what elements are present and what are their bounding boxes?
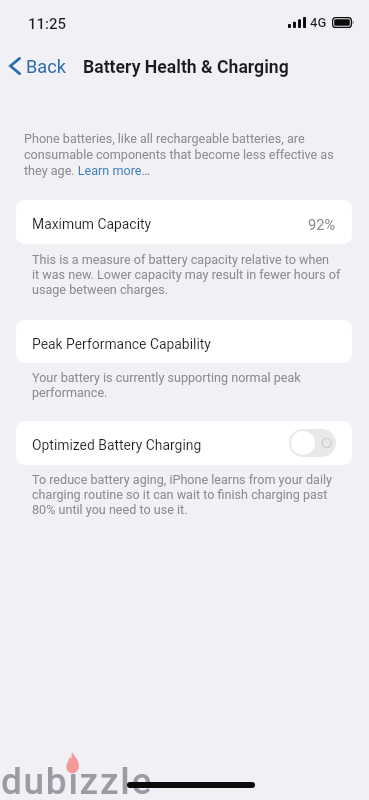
staticText: 4G: [310, 15, 327, 30]
staticText: This is a measure of battery capacity re…: [32, 252, 341, 297]
staticText: Peak Performance Capability: [32, 336, 211, 352]
staticText: Back: [26, 56, 66, 77]
staticText: Your battery is currently supporting nor…: [32, 370, 301, 400]
button[interactable]: Optimized Battery Charging toggle: [289, 429, 336, 457]
staticText: To reduce battery aging, iPhone learns f…: [32, 472, 333, 517]
button[interactable]: Maximum Capacity: [16, 200, 352, 244]
staticText: Optimized Battery Charging: [32, 437, 202, 453]
staticText: Phone batteries, like all rechargeable b…: [24, 131, 334, 178]
button[interactable]: Back: [0, 52, 72, 81]
staticText: dubizzle: [1, 760, 153, 800]
staticText: Battery Health & Charging: [83, 57, 289, 78]
button[interactable]: Peak Performance Capability: [16, 320, 352, 363]
staticText: Maximum Capacity: [32, 216, 152, 232]
staticText: 11:25: [28, 15, 67, 33]
staticText: 92%: [308, 216, 336, 233]
button[interactable]: Optimized Battery Charging: [16, 421, 352, 465]
